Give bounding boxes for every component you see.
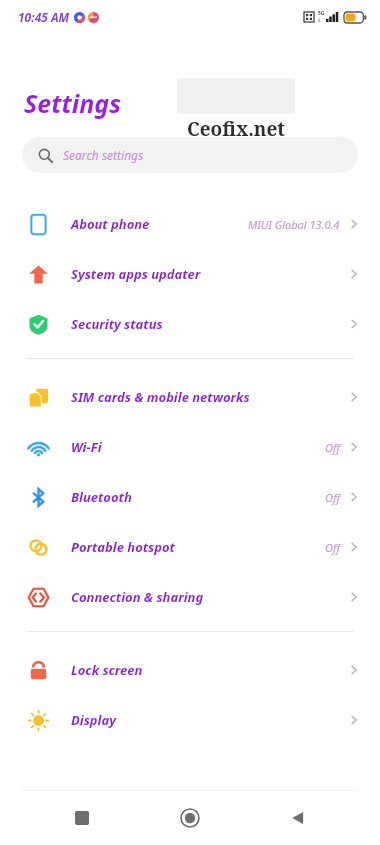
button[interactable]: Wi-Fi — [0, 422, 380, 472]
button[interactable]: Home — [164, 792, 216, 844]
button[interactable]: Bluetooth — [0, 472, 380, 522]
staticText: 5G — [318, 10, 325, 17]
staticText: Wi-Fi — [71, 438, 102, 456]
staticText: Search settings — [63, 147, 144, 163]
staticText: About phone — [71, 215, 150, 233]
button[interactable]: Search settings — [22, 137, 358, 173]
button[interactable]: Lock screen — [0, 645, 380, 695]
staticText: Off — [325, 540, 340, 555]
staticText: Off — [325, 440, 340, 455]
button[interactable]: Recent apps — [56, 792, 108, 844]
staticText: ıl — [318, 17, 321, 24]
staticText: Ceofix.net — [187, 116, 286, 142]
staticText: MIUI Global 13.0.4 — [248, 217, 340, 232]
button[interactable]: Display — [0, 695, 380, 745]
button[interactable]: Security status — [0, 299, 380, 349]
staticText: Security status — [71, 315, 163, 333]
staticText: SIM cards & mobile networks — [71, 388, 250, 406]
staticText: Settings — [24, 86, 122, 120]
staticText: Bluetooth — [71, 488, 132, 506]
staticText: System apps updater — [71, 265, 201, 283]
staticText: Off — [325, 490, 340, 505]
button[interactable]: Portable hotspot — [0, 522, 380, 572]
staticText: Lock screen — [71, 661, 143, 679]
button[interactable]: SIM cards & mobile networks — [0, 372, 380, 422]
button[interactable]: Connection & sharing — [0, 572, 380, 622]
staticText: Display — [71, 711, 116, 729]
button[interactable]: About phone — [0, 199, 380, 249]
staticText: 10:45 AM — [18, 9, 70, 25]
staticText: Portable hotspot — [71, 538, 175, 556]
button[interactable]: System apps updater — [0, 249, 380, 299]
staticText: Connection & sharing — [71, 588, 204, 606]
button[interactable]: Back — [272, 792, 324, 844]
